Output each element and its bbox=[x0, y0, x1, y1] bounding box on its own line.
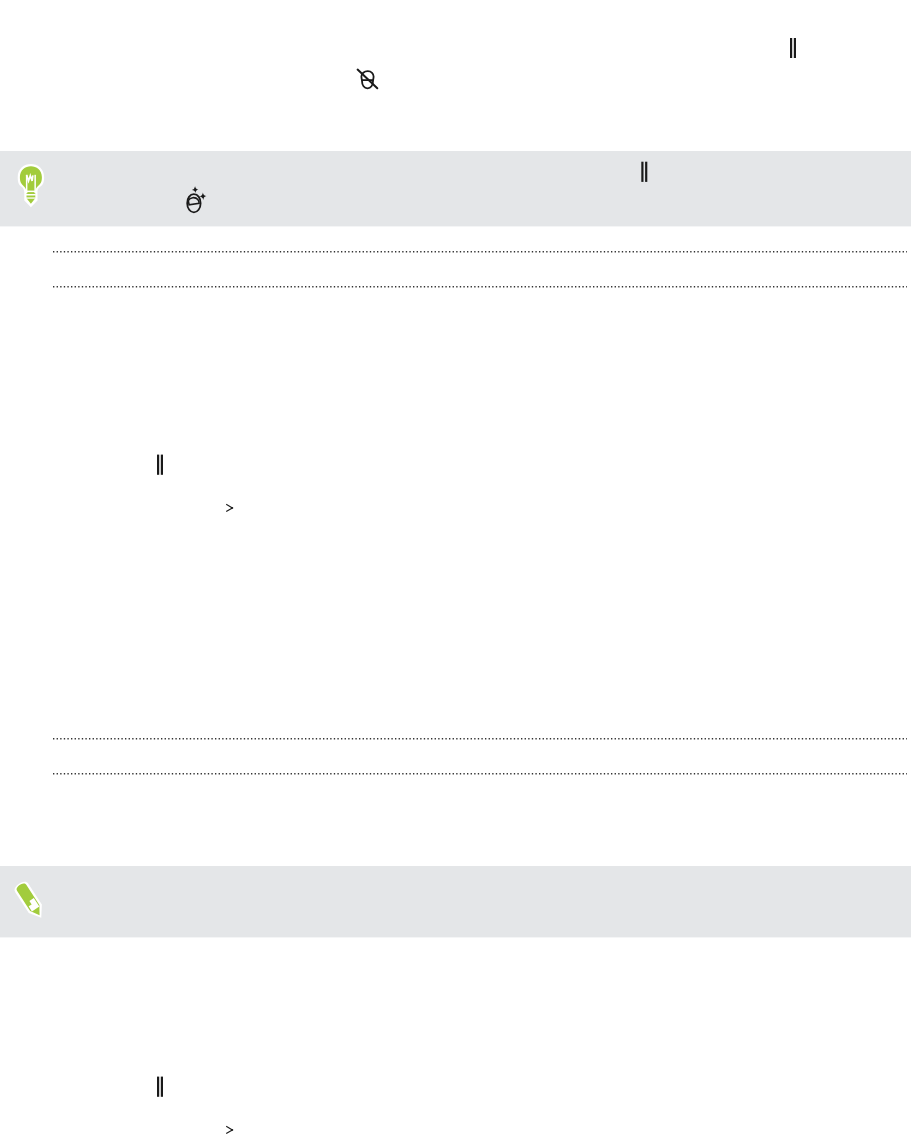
button[interactable] bbox=[0, 151, 911, 226]
button[interactable] bbox=[0, 739, 911, 774]
button[interactable] bbox=[0, 456, 911, 546]
button[interactable] bbox=[0, 774, 911, 865]
button[interactable] bbox=[0, 286, 911, 456]
button[interactable] bbox=[0, 1078, 911, 1135]
button[interactable] bbox=[0, 226, 911, 286]
button[interactable]: Mute notifications bbox=[340, 0, 430, 151]
button[interactable] bbox=[0, 546, 911, 739]
button[interactable]: More options bbox=[750, 0, 860, 151]
button[interactable] bbox=[0, 865, 911, 938]
